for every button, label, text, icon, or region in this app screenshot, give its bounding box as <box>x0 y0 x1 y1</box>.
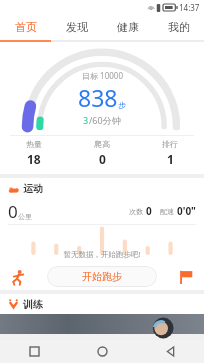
staticText: 热量 <box>26 139 42 149</box>
button[interactable]: 训练 <box>0 294 204 314</box>
staticText: 公里 <box>18 212 32 221</box>
button[interactable]: 开始跑步 <box>47 266 157 287</box>
staticText: 目标 10000 <box>82 70 123 81</box>
button[interactable]: 排行 <box>136 136 204 170</box>
staticText: 0 <box>8 200 18 223</box>
staticText: 暂无数据，开始跑步吧! <box>63 249 141 259</box>
button[interactable]: 我的 <box>153 14 204 40</box>
staticText: 14:37 <box>179 2 200 13</box>
button[interactable]: 爬高 <box>68 136 136 170</box>
staticText: 0 <box>99 151 106 167</box>
staticText: 首页 <box>15 20 37 34</box>
staticText: 发现 <box>66 20 88 34</box>
button[interactable]: 健康 <box>102 14 153 40</box>
staticText: 我的 <box>168 20 190 34</box>
button[interactable]: 首页 <box>0 14 51 40</box>
staticText: 训练 <box>23 298 43 311</box>
staticText: 运动 <box>23 182 43 195</box>
button[interactable]: 运动 <box>0 178 204 198</box>
staticText: 3 <box>83 114 89 126</box>
button[interactable]: Recents <box>0 340 68 363</box>
button[interactable]: 热量 <box>0 136 68 170</box>
button[interactable]: Back <box>136 340 204 363</box>
staticText: 排行 <box>162 139 178 149</box>
button[interactable]: 发现 <box>51 14 102 40</box>
staticText: 次数 <box>129 207 143 216</box>
button[interactable]: Home <box>68 340 136 363</box>
staticText: 838 <box>78 82 118 113</box>
staticText: 0 <box>146 204 152 218</box>
staticText: 健康 <box>117 20 139 34</box>
staticText: 18 <box>27 151 41 167</box>
button[interactable]: Running <box>8 267 28 287</box>
staticText: 1 <box>167 151 174 167</box>
button[interactable] <box>0 314 204 334</box>
staticText: /60分钟 <box>89 114 121 126</box>
staticText: 开始跑步 <box>82 270 122 283</box>
staticText: 配速 <box>160 207 174 216</box>
staticText: 步 <box>118 100 126 110</box>
staticText: 爬高 <box>94 139 110 149</box>
button[interactable]: Goal flag <box>176 267 196 287</box>
staticText: 0'0" <box>177 204 196 218</box>
